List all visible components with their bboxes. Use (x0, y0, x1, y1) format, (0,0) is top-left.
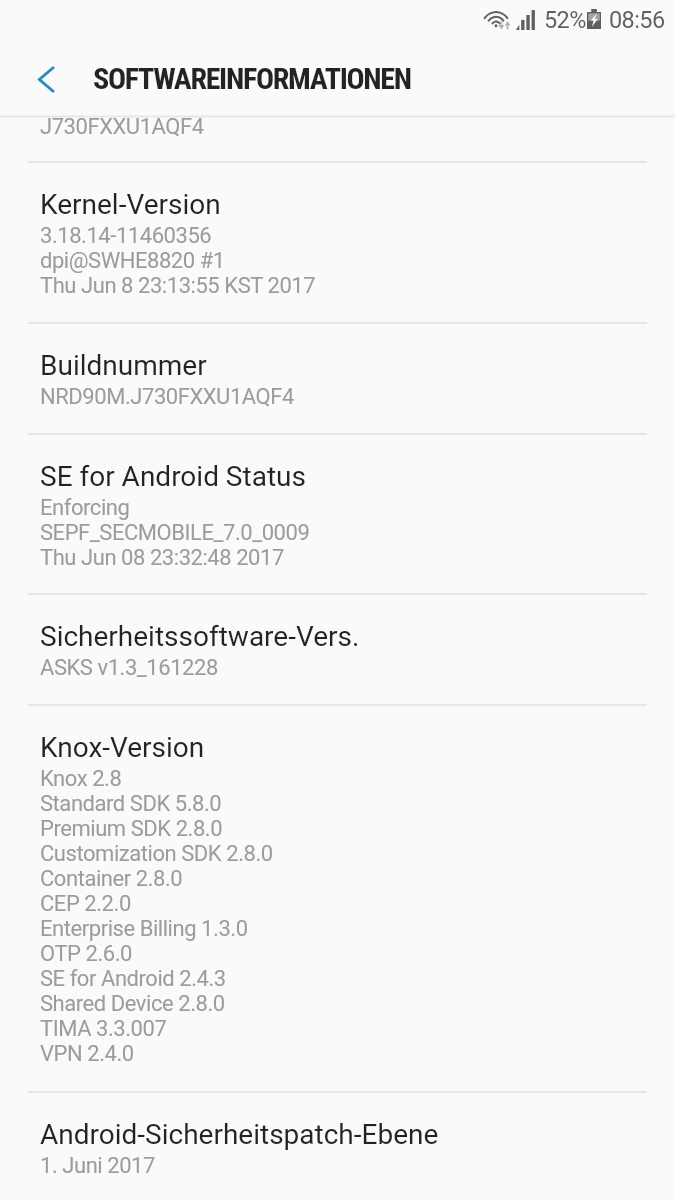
staticText: Buildnummer (40, 349, 207, 382)
staticText: Knox 2.8 (40, 766, 122, 791)
staticText: Enterprise Billing 1.3.0 (40, 916, 248, 941)
staticText: 3.18.14-11460356 (40, 223, 212, 248)
staticText: SOFTWAREINFORMATIONEN (93, 61, 411, 96)
staticText: J730FXXU1AQF4 (40, 114, 204, 139)
button[interactable]: Android-Sicherheitspatch-Ebene (0, 1091, 675, 1200)
staticText: Container 2.8.0 (40, 866, 183, 891)
staticText: 1. Juni 2017 (40, 1153, 155, 1178)
staticText: OTP 2.6.0 (40, 941, 132, 966)
staticText: Sicherheitssoftware-Vers. (40, 620, 360, 653)
button[interactable]: SE for Android Status (0, 433, 675, 593)
staticText: Standard SDK 5.8.0 (40, 791, 222, 816)
staticText: Kernel-Version (40, 188, 221, 221)
button[interactable]: Knox-Version (0, 704, 675, 1091)
staticText: 08:56 (609, 6, 665, 34)
staticText: Customization SDK 2.8.0 (40, 841, 273, 866)
staticText: Premium SDK 2.8.0 (40, 816, 223, 841)
staticText: Thu Jun 08 23:32:48 2017 (40, 545, 284, 570)
staticText: SE for Android Status (40, 460, 306, 493)
button[interactable]: Buildnummer (0, 322, 675, 433)
staticText: NRD90M.J730FXXU1AQF4 (40, 384, 294, 409)
staticText: ASKS v1.3_161228 (40, 655, 218, 680)
staticText: Knox-Version (40, 731, 205, 764)
staticText: CEP 2.2.0 (40, 891, 131, 916)
button[interactable]: Sicherheitssoftware-Vers. (0, 593, 675, 704)
staticText: Shared Device 2.8.0 (40, 991, 225, 1016)
staticText: 52% (544, 6, 586, 34)
staticText: TIMA 3.3.007 (40, 1016, 167, 1041)
staticText: SEPF_SECMOBILE_7.0_0009 (40, 520, 310, 545)
staticText: SE for Android 2.4.3 (40, 966, 226, 991)
button[interactable]: Back (23, 54, 71, 102)
staticText: Thu Jun 8 23:13:55 KST 2017 (40, 273, 316, 298)
staticText: dpi@SWHE8820 #1 (40, 248, 225, 273)
staticText: Android-Sicherheitspatch-Ebene (40, 1118, 439, 1151)
button[interactable]: Kernel-Version (0, 161, 675, 322)
staticText: Enforcing (40, 495, 130, 520)
staticText: VPN 2.4.0 (40, 1041, 134, 1066)
button[interactable]: J730FXXU1AQF4 (0, 118, 675, 161)
